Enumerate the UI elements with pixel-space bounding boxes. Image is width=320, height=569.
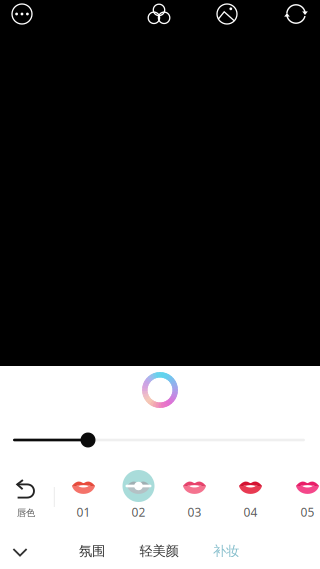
staticText: 03 (187, 504, 201, 520)
button[interactable]: Collapse panel (0, 535, 40, 569)
button[interactable]: 轻美颜 (129, 534, 189, 568)
button[interactable]: 05 (281, 467, 320, 519)
button[interactable]: 02 (112, 467, 164, 519)
button[interactable]: Photo library (210, 0, 244, 29)
staticText: 04 (243, 504, 257, 520)
button[interactable]: 04 (224, 467, 276, 519)
staticText: 02 (131, 504, 145, 520)
staticText: 补妆 (213, 543, 239, 559)
staticText: 唇色 (17, 507, 35, 519)
button[interactable]: 03 (168, 467, 220, 519)
button[interactable]: More options (5, 0, 39, 29)
button[interactable]: 01 (57, 467, 109, 519)
button[interactable]: Flip camera (279, 0, 313, 29)
button[interactable]: Filters (142, 0, 176, 29)
staticText: 01 (76, 504, 90, 520)
staticText: 05 (300, 504, 314, 520)
button[interactable]: 氛围 (64, 534, 120, 568)
button[interactable]: 唇色 (1, 466, 47, 518)
staticText: 轻美颜 (139, 543, 178, 559)
button[interactable]: 补妆 (198, 534, 254, 568)
staticText: 氛围 (79, 543, 105, 559)
